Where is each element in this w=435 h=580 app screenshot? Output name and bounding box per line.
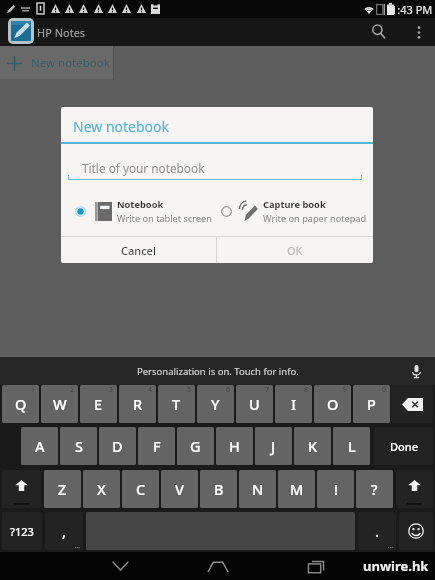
button[interactable]: X [83, 470, 120, 508]
button[interactable]: More options [402, 18, 435, 46]
button[interactable]: A [21, 427, 58, 465]
button[interactable]: K [294, 427, 331, 465]
button[interactable]: New notebook [0, 46, 113, 80]
staticText: T [172, 394, 181, 414]
staticText: OK [287, 243, 303, 258]
staticText: Notebook [117, 198, 164, 211]
button[interactable]: W [41, 385, 78, 423]
staticText: O [327, 394, 339, 414]
staticText: ... [75, 542, 80, 550]
button[interactable]: Recents [281, 552, 351, 580]
button[interactable]: P [353, 385, 390, 423]
staticText: 9 [343, 385, 348, 395]
button[interactable]: M [278, 470, 315, 508]
button[interactable]: Search [356, 18, 402, 46]
button[interactable]: , [45, 512, 83, 550]
button[interactable]: Backspace [391, 385, 433, 423]
staticText: Q [15, 394, 27, 414]
button[interactable]: Back [85, 552, 155, 580]
staticText: S [75, 436, 83, 456]
button[interactable]: Shift [2, 470, 41, 508]
button[interactable]: Q [2, 385, 39, 423]
button[interactable]: J [255, 427, 292, 465]
staticText: R [133, 394, 143, 414]
staticText: H [229, 436, 240, 456]
staticText: ... [388, 542, 393, 550]
button[interactable]: N [239, 470, 276, 508]
button[interactable]: E [80, 385, 117, 423]
staticText: Write on paper notepad [263, 212, 367, 225]
staticText: . [375, 521, 379, 541]
button[interactable]: ?123 [2, 512, 42, 550]
button[interactable]: Cancel [61, 237, 216, 263]
staticText: Write on tablet screen [117, 212, 212, 225]
staticText: 4 [148, 385, 153, 395]
button[interactable]: Y [197, 385, 234, 423]
button[interactable]: L [333, 427, 370, 465]
staticText: I [291, 394, 297, 414]
staticText: , [62, 521, 66, 541]
button[interactable]: H [216, 427, 253, 465]
button[interactable]: B [200, 470, 237, 508]
button[interactable]: OK [217, 237, 373, 263]
staticText: 5 [187, 385, 192, 395]
staticText: G [190, 436, 201, 456]
staticText: 8 [304, 385, 309, 395]
button[interactable]: ? [356, 470, 393, 508]
button[interactable]: Z [44, 470, 81, 508]
staticText: V [175, 479, 184, 499]
staticText: Z [58, 479, 67, 499]
staticText: Personalization is on. Touch for info. [137, 365, 299, 378]
button[interactable]: S [60, 427, 97, 465]
button[interactable]: Capture book [219, 194, 371, 228]
staticText: New notebook [73, 117, 169, 136]
staticText: 3 [109, 385, 114, 395]
button[interactable]: Emoji [399, 512, 433, 550]
button[interactable]: O [314, 385, 351, 423]
button[interactable]: T [158, 385, 195, 423]
staticText: Done [390, 439, 418, 454]
button[interactable]: C [122, 470, 159, 508]
staticText: K [308, 436, 318, 456]
button[interactable]: I [275, 385, 312, 423]
staticText: 1 [31, 385, 36, 395]
button[interactable]: F [138, 427, 175, 465]
staticText: E [94, 394, 103, 414]
button[interactable]: R [119, 385, 156, 423]
staticText: N [252, 479, 264, 499]
staticText: A [35, 436, 45, 456]
staticText: 2 [70, 385, 75, 395]
staticText: 1:43 PM [391, 2, 433, 17]
button[interactable]: U [236, 385, 273, 423]
staticText: 0 [382, 385, 387, 395]
button[interactable]: V [161, 470, 198, 508]
button[interactable]: ! [317, 470, 354, 508]
staticText: Capture book [263, 198, 326, 211]
staticText: ? [371, 479, 378, 499]
button[interactable]: G [177, 427, 214, 465]
staticText: ?123 [10, 524, 34, 539]
staticText: D [112, 436, 123, 456]
button[interactable]: D [99, 427, 136, 465]
button[interactable]: . [358, 512, 396, 550]
staticText: 7 [265, 385, 270, 395]
staticText: HP Notes [37, 25, 86, 40]
staticText: M [290, 479, 304, 499]
staticText: B [214, 479, 224, 499]
staticText: F [153, 436, 161, 456]
staticText: Cancel [121, 243, 156, 258]
button[interactable]: Shift [396, 470, 433, 508]
staticText: ! [334, 479, 338, 499]
button[interactable]: Done [374, 427, 433, 465]
button[interactable]: Personalization is on. Touch for info. [0, 357, 435, 385]
staticText: unwire.hk [363, 557, 429, 575]
button[interactable]: Voice input [409, 364, 423, 378]
staticText: Y [211, 394, 220, 414]
button[interactable]: Notebook [73, 194, 221, 228]
staticText: L [348, 436, 356, 456]
button[interactable]: Home [183, 552, 253, 580]
staticText: J [271, 436, 276, 456]
staticText: P [367, 394, 376, 414]
staticText: 6 [226, 385, 231, 395]
